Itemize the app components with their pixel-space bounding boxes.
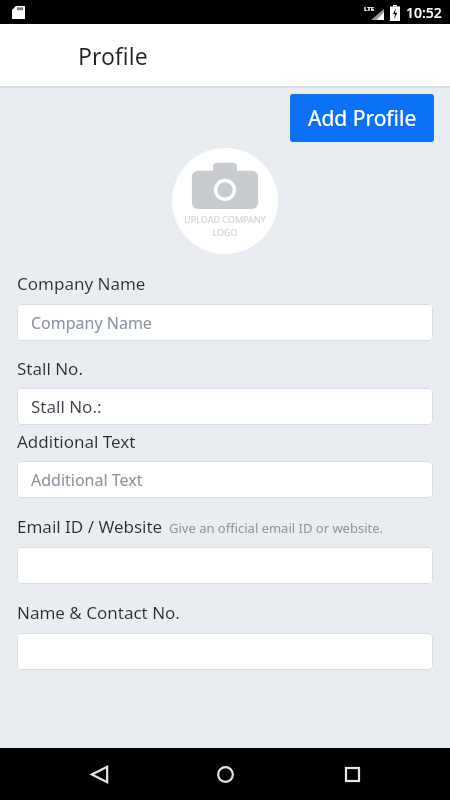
staticText: Company Name	[17, 272, 146, 295]
button[interactable]: Add Profile	[290, 94, 434, 142]
staticText: Additional Text	[17, 430, 136, 453]
button[interactable]	[17, 633, 433, 670]
staticText: Company Name	[31, 312, 152, 334]
staticText: LTE	[364, 5, 375, 13]
staticText: Stall No.:	[31, 395, 102, 418]
staticText: Add Profile	[308, 104, 417, 133]
button[interactable]: Upload company logo	[172, 148, 278, 254]
button[interactable]: Stall No.:	[17, 388, 433, 425]
button[interactable]	[17, 547, 433, 584]
button[interactable]: Recent apps	[324, 748, 380, 800]
button[interactable]: Home	[197, 748, 253, 800]
staticText: Stall No.	[17, 357, 83, 380]
staticText: Name & Contact No.	[17, 601, 180, 624]
staticText: 10:52	[406, 3, 442, 22]
staticText: Profile	[78, 40, 148, 71]
staticText: Give an official email ID or website.	[169, 519, 384, 537]
staticText: Additional Text	[31, 469, 143, 491]
button[interactable]: Additional Text	[17, 461, 433, 498]
button[interactable]: Company Name	[17, 304, 433, 341]
staticText: Email ID / Website	[17, 515, 163, 538]
staticText: LOGO	[212, 226, 238, 238]
button[interactable]: Back	[71, 748, 127, 800]
staticText: UPLOAD COMPANY	[184, 213, 266, 225]
